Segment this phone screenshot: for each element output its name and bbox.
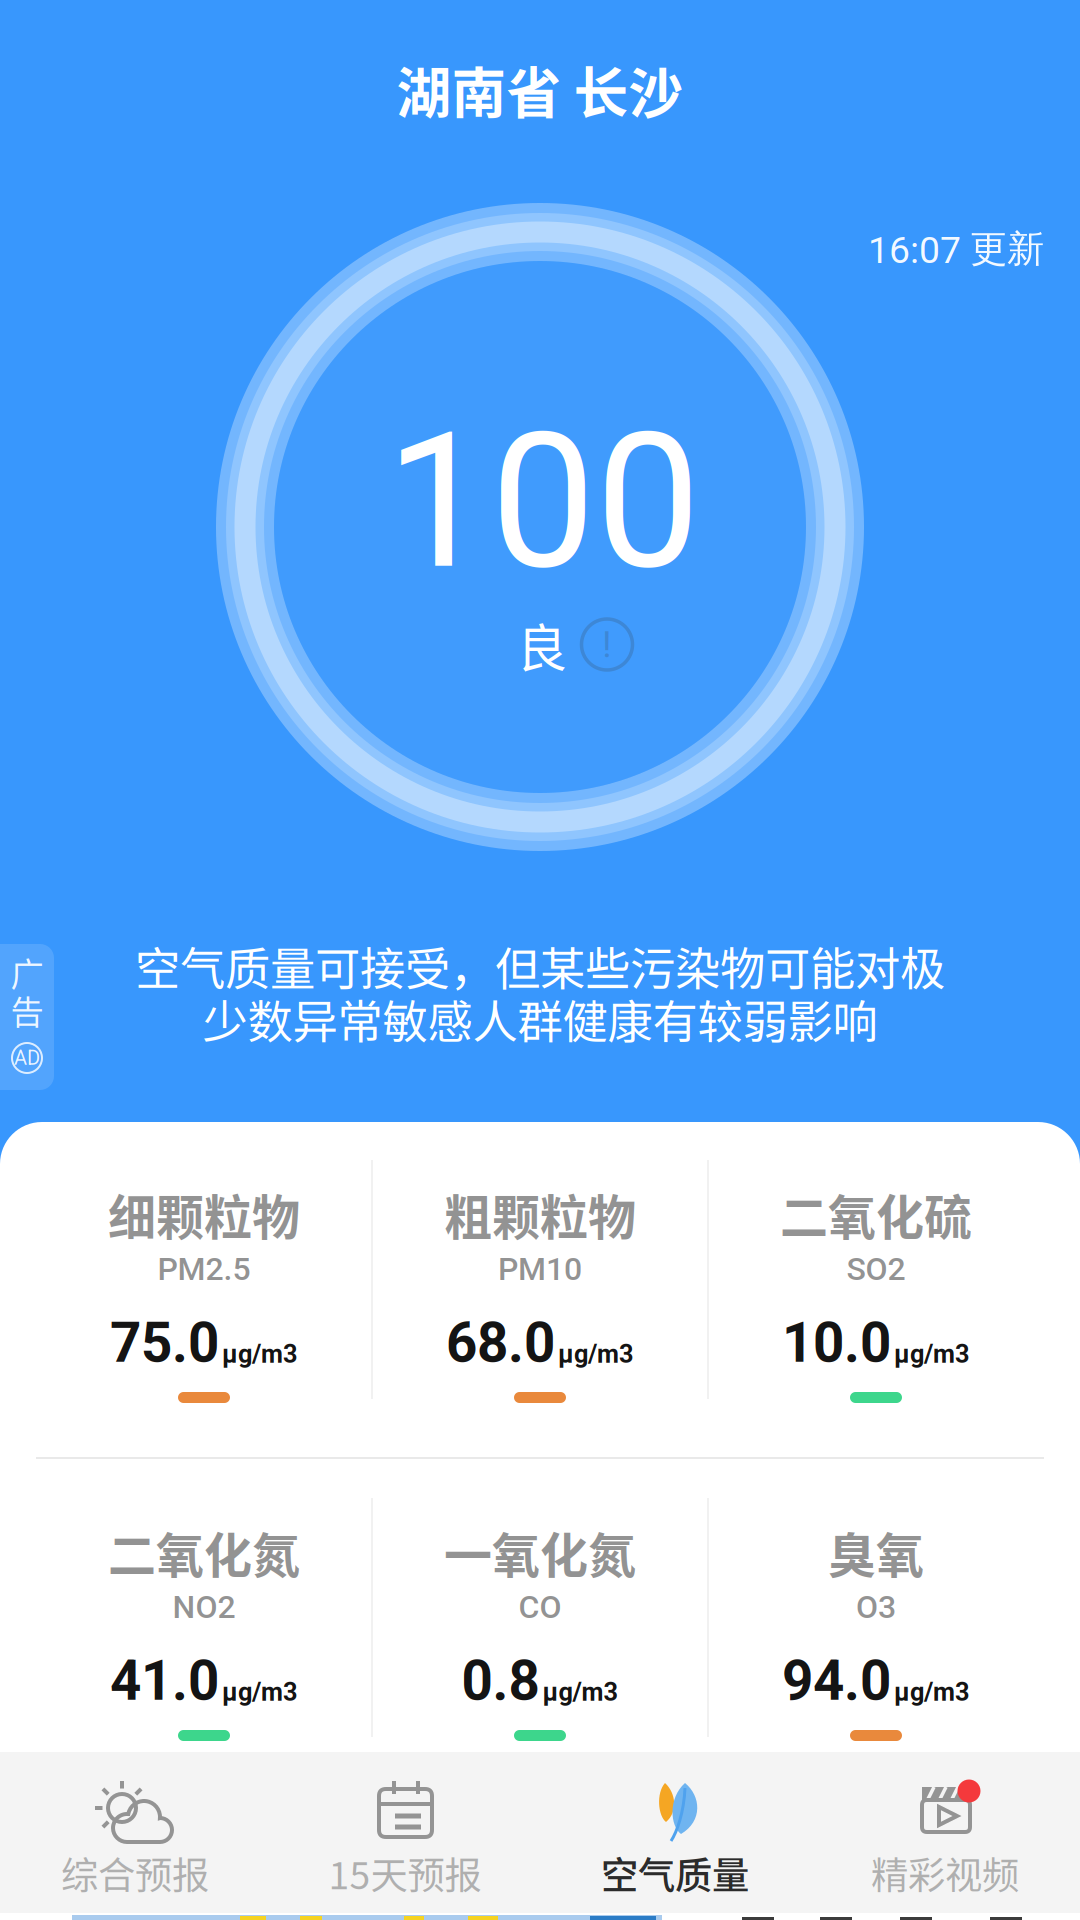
staticText: 良 [516, 608, 567, 682]
staticText: PM10 [498, 1250, 582, 1288]
staticText: μg/m3 [222, 1339, 298, 1369]
staticText: 100 [385, 393, 700, 611]
staticText: O3 [856, 1588, 896, 1626]
staticText: 16:07 更新 [868, 225, 1044, 272]
staticText: NO2 [172, 1588, 235, 1626]
staticText: 粗颗粒物 [444, 1179, 636, 1249]
staticText: 二氧化氮 [108, 1517, 300, 1587]
staticText: 臭氧 [828, 1517, 924, 1587]
staticText: μg/m3 [558, 1339, 634, 1369]
button[interactable]: 广告 [0, 944, 54, 1090]
staticText: 少数异常敏感人群健康有较弱影响 [202, 986, 877, 1052]
button[interactable]: 综合预报 [0, 1752, 270, 1913]
staticText: 广 [10, 948, 43, 996]
staticText: μg/m3 [542, 1677, 618, 1707]
staticText: SO2 [846, 1250, 905, 1288]
staticText: 0.8 [461, 1649, 539, 1713]
staticText: 告 [10, 986, 43, 1034]
staticText: AD [14, 1046, 40, 1070]
button[interactable]: 精彩视频 [810, 1752, 1080, 1913]
staticText: 空气质量 [601, 1846, 749, 1900]
staticText: 湖南省 长沙 [396, 49, 683, 129]
button[interactable]: 空气质量 [540, 1752, 810, 1913]
staticText: 68.0 [446, 1311, 555, 1375]
staticText: 41.0 [110, 1649, 219, 1713]
staticText: 94.0 [782, 1649, 891, 1713]
staticText: μg/m3 [894, 1677, 970, 1707]
staticText: 一氧化氮 [444, 1517, 636, 1587]
staticText: 细颗粒物 [108, 1179, 300, 1249]
staticText: PM2.5 [157, 1250, 250, 1288]
staticText: 75.0 [110, 1311, 219, 1375]
staticText: μg/m3 [222, 1677, 298, 1707]
staticText: 15天预报 [328, 1846, 481, 1900]
staticText: ! [602, 623, 612, 666]
staticText: 10.0 [782, 1311, 891, 1375]
staticText: 综合预报 [61, 1846, 209, 1900]
button[interactable]: 15天预报 [270, 1752, 540, 1913]
staticText: 精彩视频 [871, 1846, 1019, 1900]
staticText: 二氧化硫 [780, 1179, 972, 1249]
staticText: 空气质量可接受，但某些污染物可能对极 [135, 933, 945, 999]
staticText: μg/m3 [894, 1339, 970, 1369]
staticText: CO [518, 1588, 561, 1626]
